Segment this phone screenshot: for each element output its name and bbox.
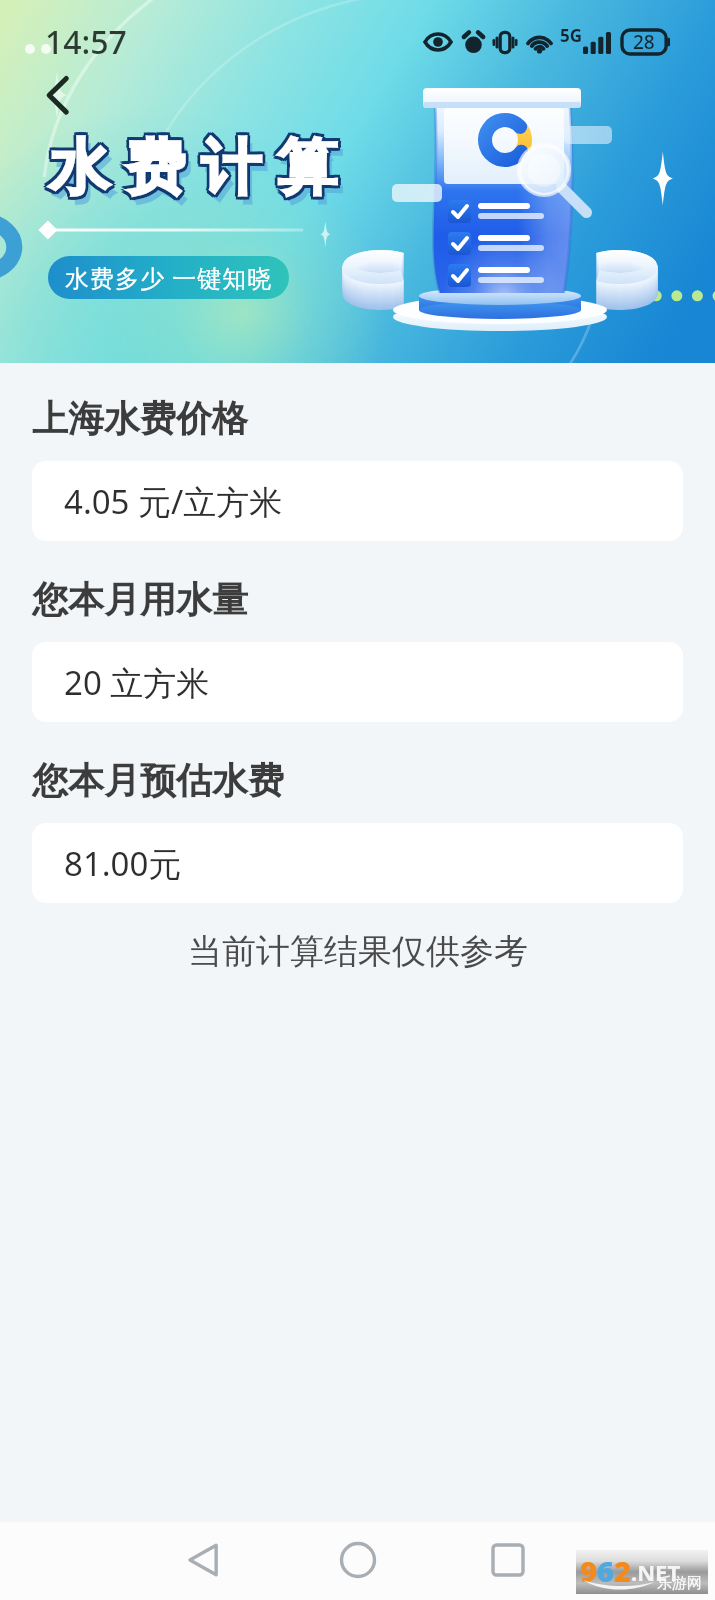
staticText: 上海水费价格	[32, 396, 248, 441]
staticText: 水费计算	[41, 130, 345, 206]
staticText: 当前计算结果仅供参考	[188, 930, 528, 973]
staticText: 4.05 元/立方米	[64, 479, 283, 524]
button[interactable]: 4.05 元/立方米	[32, 461, 683, 541]
staticText: 水费计算	[43, 132, 347, 208]
staticText: 水费计算	[46, 138, 350, 214]
staticText: 6	[597, 1551, 614, 1590]
staticText: 水费计算	[39, 128, 343, 204]
staticText: 9	[580, 1551, 597, 1590]
staticText: 水费计算	[43, 128, 347, 204]
staticText: 20 立方米	[64, 660, 210, 705]
staticText: 水费计算	[39, 133, 343, 209]
staticText: 水费多少 一键知晓	[65, 261, 273, 294]
staticText: 乐游网	[657, 1574, 702, 1593]
staticText: 14:57	[45, 20, 127, 64]
staticText: 水费计算	[41, 133, 345, 209]
button[interactable]: Recents	[468, 1521, 548, 1599]
staticText: 28	[633, 29, 655, 55]
staticText: 水费计算	[39, 132, 343, 208]
staticText: 水费计算	[38, 130, 342, 206]
staticText: 81.00元	[64, 841, 182, 886]
staticText: 您本月用水量	[32, 577, 248, 622]
staticText: 您本月预估水费	[32, 758, 284, 803]
button[interactable]: 20 立方米	[32, 642, 683, 722]
button[interactable]: Back	[28, 66, 86, 124]
staticText: 水费计算	[43, 133, 347, 209]
staticText: 水费计算	[39, 127, 343, 203]
staticText: 水费计算	[41, 127, 345, 203]
staticText: 2	[614, 1551, 631, 1590]
button[interactable]: 81.00元	[32, 823, 683, 903]
staticText: 5G	[560, 24, 583, 47]
staticText: 水费计算	[43, 127, 347, 203]
staticText: 水费计算	[44, 130, 348, 206]
button[interactable]: Back	[164, 1521, 244, 1599]
staticText: .NET	[631, 1557, 681, 1587]
button[interactable]: Home	[318, 1521, 398, 1599]
button[interactable]: 水费多少 一键知晓	[48, 256, 289, 299]
